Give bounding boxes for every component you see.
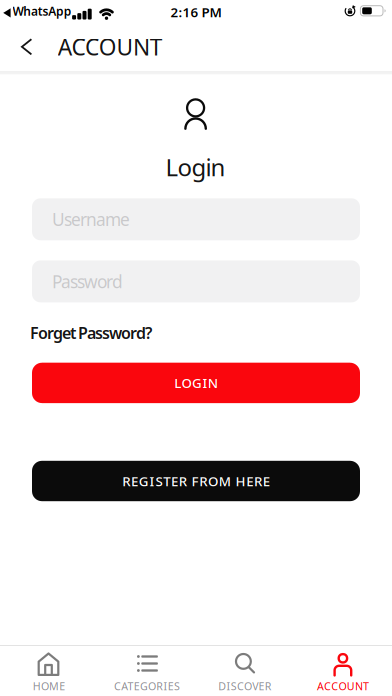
button[interactable]: Username [32,198,360,240]
staticText: WhatsApp [13,3,72,19]
button[interactable]: Back [21,38,33,55]
button[interactable]: Forget Password? [30,322,152,343]
staticText: Password [52,270,123,293]
staticText: Login [165,151,225,183]
staticText: CATEGORIES [114,679,180,693]
button[interactable]: CATEGORIES [98,645,196,696]
button[interactable]: REGISTER FROM HERE [32,461,360,501]
button[interactable]: Password [32,260,360,302]
staticText: Forget Password? [30,322,152,343]
staticText: 2:16 PM [170,3,221,21]
staticText: DISCOVER [218,679,272,693]
staticText: LOGIN [174,374,218,392]
staticText: HOME [33,679,65,693]
staticText: ACCOUNT [58,32,163,62]
button[interactable]: DISCOVER [196,645,294,696]
staticText: REGISTER FROM HERE [122,472,270,490]
staticText: ACCOUNT [317,679,369,693]
button[interactable]: LOGIN [32,363,360,403]
button[interactable]: ACCOUNT [294,645,392,696]
button[interactable]: HOME [0,645,98,696]
staticText: Username [52,208,130,231]
